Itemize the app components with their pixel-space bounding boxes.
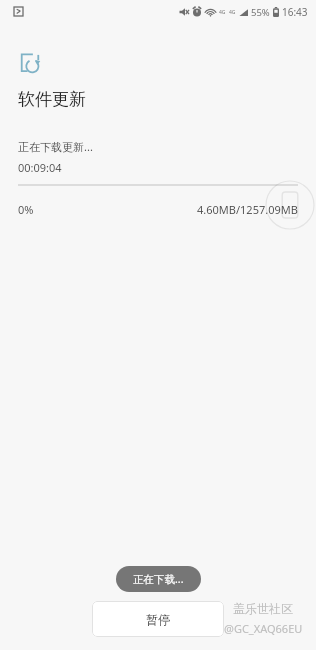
staticText: 55% <box>251 6 270 19</box>
staticText: 4G <box>219 9 226 16</box>
staticText: 16:43 <box>282 5 308 19</box>
button[interactable]: 暂停 <box>92 601 224 637</box>
staticText: 软件更新 <box>18 89 86 110</box>
staticText: 00:09:04 <box>18 160 62 175</box>
staticText: 正在下载... <box>133 572 184 586</box>
staticText: 盖乐世社区 <box>233 601 293 616</box>
staticText: 0% <box>18 202 34 217</box>
staticText: 正在下载更新... <box>18 139 93 154</box>
staticText: @GC_XAQ66EU <box>224 621 303 636</box>
staticText: 暂停 <box>146 612 170 627</box>
staticText: 4.60MB/1257.09MB <box>197 202 298 217</box>
button[interactable]: 正在下载... <box>116 566 201 592</box>
staticText: 4G <box>229 9 236 16</box>
